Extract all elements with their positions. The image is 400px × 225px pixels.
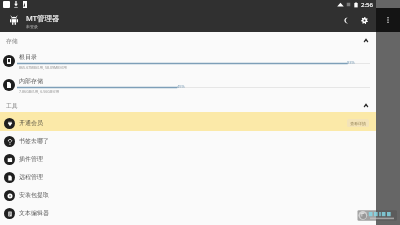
button[interactable]: 插件管理 [0,150,376,168]
button[interactable]: 开通会员 [0,114,376,132]
button[interactable]: Android [5,9,22,32]
button[interactable]: 书签去哪了 [0,132,376,150]
staticText: 远程管理 [19,173,43,181]
button[interactable]: 根目录 [0,50,376,72]
staticText: 存储 [6,37,18,44]
button[interactable]: 工具 [0,98,376,113]
button[interactable]: 安装包提取 [0,186,376,204]
button[interactable]: Night mode [338,9,354,32]
staticText: 7.86GB已用, 6.56GB可用 [19,89,60,94]
staticText: MT管理器 [26,13,60,23]
staticText: 书签去哪了 [19,137,49,145]
staticText: 查看详情 [350,121,366,126]
button[interactable]: Settings [356,9,372,32]
staticText: 93% [347,60,355,65]
button[interactable]: 文本编辑器 [0,204,376,222]
staticText: 45% [177,84,185,89]
staticText: 内部存储 [19,77,43,85]
staticText: 2:56 [361,1,373,9]
button[interactable]: 查看详情 [347,119,369,127]
staticText: 根目录 [19,53,37,61]
staticText: 安装包提取 [19,191,49,199]
button[interactable]: More options [376,8,400,32]
staticText: 文本编辑器 [19,209,49,217]
staticText: 插件管理 [19,155,43,163]
staticText: 865.67MB已用, 58.09MB可用 [19,65,67,70]
button[interactable]: 内部存储 [0,74,376,96]
staticText: 开通会员 [19,119,43,127]
button[interactable]: 远程管理 [0,168,376,186]
staticText: 工具 [6,102,18,109]
button[interactable]: 存储 [0,33,376,48]
staticText: 未登录 [26,24,38,29]
